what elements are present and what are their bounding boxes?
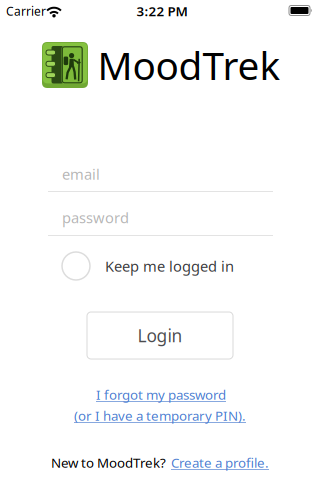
staticText: email: [62, 164, 100, 184]
staticText: I forgot my password: [96, 386, 226, 403]
staticText: Login: [137, 324, 182, 347]
button[interactable]: (or I have a temporary PIN).: [74, 407, 246, 424]
staticText: MoodTrek: [97, 39, 280, 91]
button[interactable]: I forgot my password: [96, 386, 226, 403]
button[interactable]: Create a profile.: [171, 454, 269, 471]
button[interactable]: Login: [87, 312, 233, 359]
staticText: Create a profile.: [171, 454, 269, 471]
staticText: Carrier: [6, 3, 46, 19]
staticText: (or I have a temporary PIN).: [74, 407, 246, 424]
staticText: Keep me logged in: [105, 256, 234, 276]
staticText: password: [62, 208, 129, 227]
staticText: New to MoodTrek?: [51, 454, 166, 471]
button[interactable]: Keep me logged in: [0, 252, 320, 280]
staticText: 3:22 PM: [136, 2, 187, 20]
